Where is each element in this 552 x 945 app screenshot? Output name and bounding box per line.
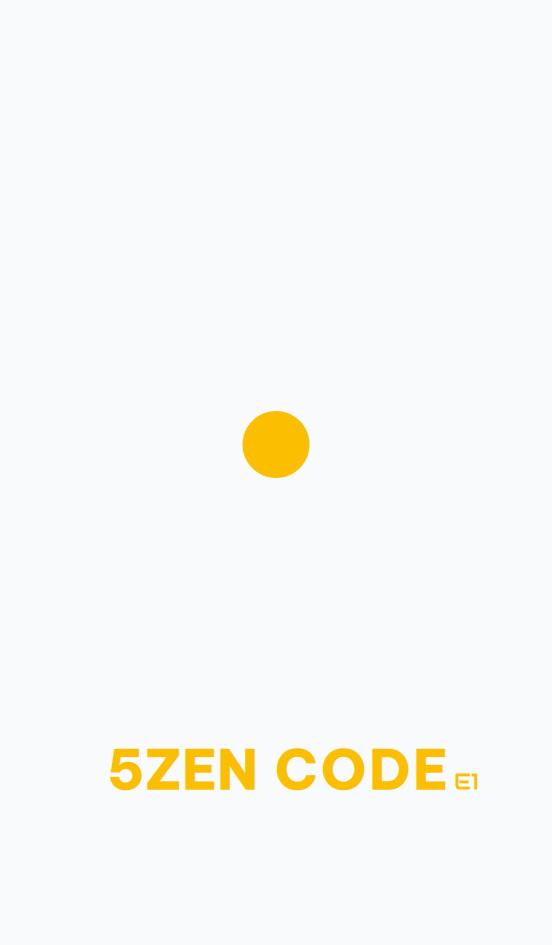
- staticText: 5ZEN: [107, 735, 258, 804]
- staticText: CODE: [275, 735, 448, 804]
- staticText: E1: [454, 767, 479, 796]
